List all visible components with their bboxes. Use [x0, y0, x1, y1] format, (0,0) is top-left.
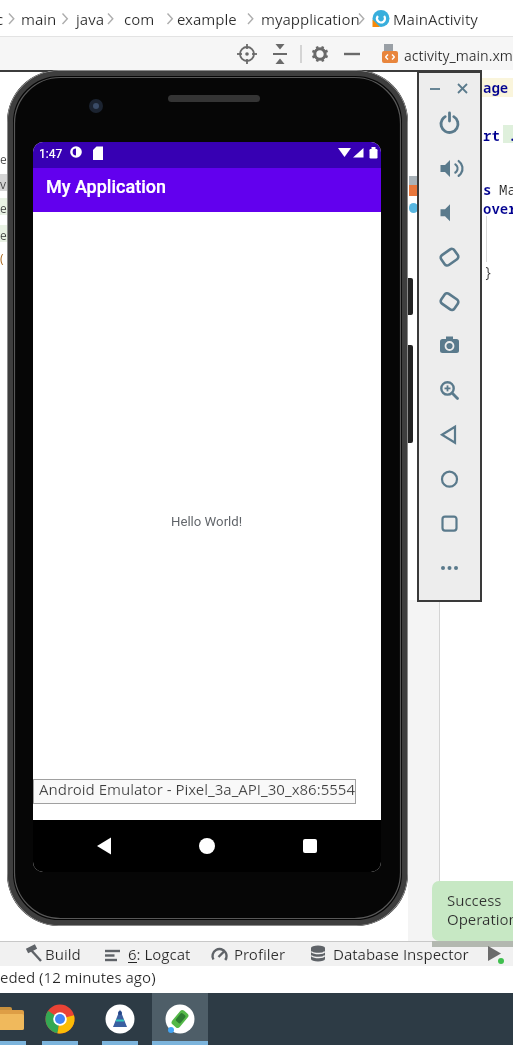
- staticText: Hello World!: [171, 514, 243, 529]
- button[interactable]: [436, 422, 463, 449]
- staticText: Profiler: [234, 944, 286, 964]
- staticText: activity_main.xm: [404, 46, 513, 65]
- staticText: }: [484, 262, 493, 281]
- staticText: s: [483, 180, 492, 199]
- button[interactable]: [28, 943, 90, 965]
- button[interactable]: [268, 42, 292, 66]
- staticText: My Application: [46, 176, 167, 197]
- button[interactable]: [308, 42, 332, 66]
- button[interactable]: [295, 832, 323, 860]
- button[interactable]: [436, 155, 463, 182]
- staticText: Operation: [447, 909, 513, 929]
- staticText: Build: [45, 944, 81, 964]
- button[interactable]: MainActivity: [0, 0, 85, 20]
- button[interactable]: [340, 42, 364, 66]
- staticText: e.: [0, 151, 10, 167]
- staticText: 6: Logcat: [128, 944, 191, 964]
- button[interactable]: [436, 111, 463, 138]
- button[interactable]: [436, 333, 463, 360]
- button[interactable]: [436, 555, 463, 582]
- staticText: age: [483, 78, 509, 97]
- button[interactable]: [118, 943, 188, 965]
- button[interactable]: [235, 42, 259, 66]
- button[interactable]: [42, 993, 78, 1045]
- staticText: Database Inspector: [333, 944, 469, 964]
- button[interactable]: [436, 289, 463, 316]
- staticText: rt .: [483, 126, 513, 145]
- staticText: e.: [0, 227, 10, 243]
- button[interactable]: com: [0, 0, 31, 20]
- staticText: over: [483, 199, 513, 218]
- button[interactable]: example: [0, 0, 60, 20]
- staticText: vi: [0, 176, 10, 192]
- button[interactable]: [210, 943, 285, 965]
- staticText: eded (12 minutes ago): [0, 967, 156, 987]
- button[interactable]: [89, 832, 117, 860]
- button[interactable]: [193, 832, 221, 860]
- staticText: c: [0, 9, 4, 29]
- button[interactable]: [436, 244, 463, 271]
- staticText: Ma: [499, 180, 513, 199]
- staticText: Android Emulator - Pixel_3a_API_30_x86:5…: [39, 779, 355, 799]
- staticText: e.: [0, 200, 10, 216]
- button[interactable]: [152, 993, 208, 1045]
- button[interactable]: [436, 511, 463, 538]
- button[interactable]: java: [0, 0, 28, 20]
- button[interactable]: [314, 943, 462, 965]
- button[interactable]: [436, 377, 463, 404]
- button[interactable]: [436, 200, 463, 227]
- button[interactable]: [102, 993, 138, 1045]
- button[interactable]: [436, 466, 463, 493]
- staticText: 1:47: [39, 147, 63, 161]
- button[interactable]: main: [0, 0, 36, 20]
- staticText: (: [0, 250, 4, 266]
- staticText: Success: [447, 890, 502, 910]
- button[interactable]: myapplication: [0, 0, 99, 20]
